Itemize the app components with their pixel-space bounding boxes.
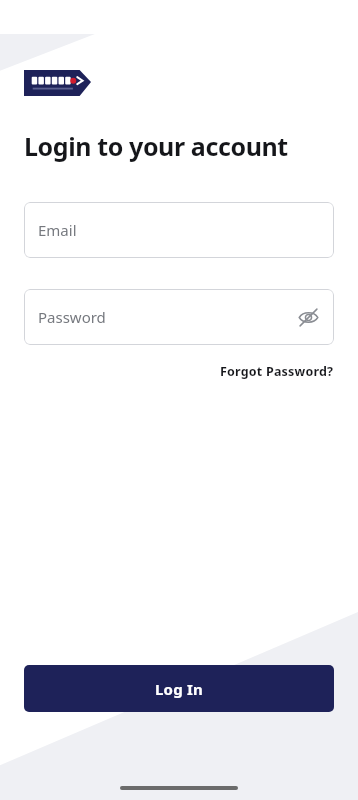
button[interactable]: Forgot Password? — [220, 363, 334, 380]
button[interactable]: Sopakco logo — [24, 70, 91, 96]
staticText: Log In — [155, 679, 203, 699]
staticText: Login to your account — [24, 129, 288, 163]
staticText: Email — [38, 220, 77, 240]
staticText: Forgot Password? — [220, 363, 334, 380]
staticText: Password — [38, 307, 106, 327]
button[interactable]: Log In — [24, 665, 334, 712]
button[interactable]: Email — [24, 202, 334, 258]
button[interactable]: Show password — [294, 303, 322, 331]
button[interactable]: Password — [24, 289, 334, 345]
